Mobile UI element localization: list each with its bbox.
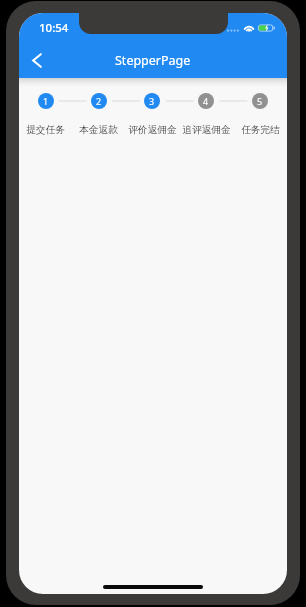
button[interactable]: 2 bbox=[72, 93, 125, 136]
staticText: 4 bbox=[203, 95, 209, 107]
button[interactable]: 1 bbox=[19, 93, 72, 136]
staticText: 评价返佣金 bbox=[128, 124, 177, 136]
button[interactable]: 4 bbox=[179, 93, 233, 136]
button[interactable]: 3 bbox=[125, 93, 179, 136]
staticText: 10:54 bbox=[39, 20, 69, 36]
staticText: 追评返佣金 bbox=[182, 124, 231, 136]
staticText: StepperPage bbox=[115, 52, 191, 69]
button[interactable]: 5 bbox=[233, 93, 287, 136]
staticText: 本金返款 bbox=[79, 124, 118, 136]
staticText: 提交任务 bbox=[26, 124, 65, 136]
staticText: 2 bbox=[96, 95, 102, 107]
staticText: 3 bbox=[149, 95, 155, 107]
staticText: 1 bbox=[43, 95, 49, 107]
staticText: 5 bbox=[257, 95, 263, 107]
button[interactable]: Back bbox=[21, 44, 53, 76]
staticText: 任务完结 bbox=[241, 124, 280, 136]
